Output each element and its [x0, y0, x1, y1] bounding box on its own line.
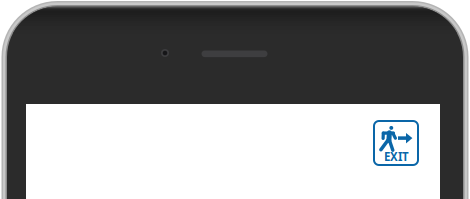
button[interactable]: Exit: [373, 120, 419, 166]
staticText: EXIT: [384, 149, 409, 164]
